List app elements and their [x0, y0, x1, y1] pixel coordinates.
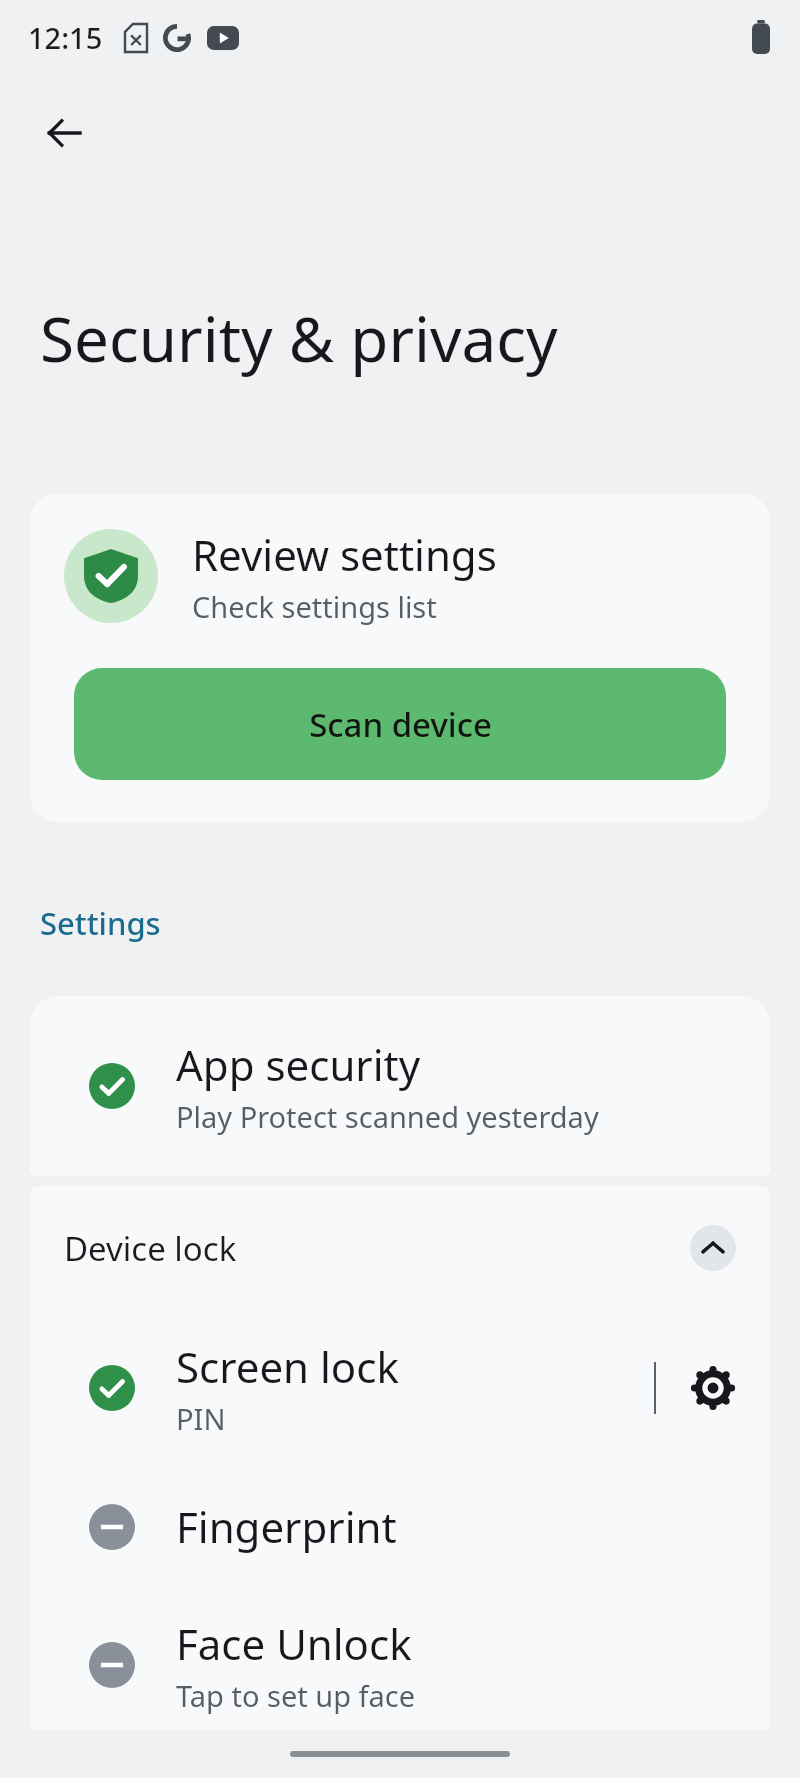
- staticText: Scan device: [309, 702, 492, 747]
- button[interactable]: Review settings: [30, 494, 770, 822]
- staticText: Face Unlock: [176, 1615, 412, 1672]
- staticText: Security & privacy: [40, 296, 558, 380]
- staticText: Fingerprint: [176, 1498, 397, 1555]
- button[interactable]: Screen lock settings: [656, 1328, 770, 1448]
- button[interactable]: App security: [30, 996, 770, 1176]
- button[interactable]: Back: [24, 93, 104, 173]
- staticText: Play Protect scanned yesterday: [176, 1097, 599, 1136]
- staticText: 12:15: [28, 18, 103, 57]
- staticText: Review settings: [192, 526, 497, 583]
- button[interactable]: Device lock: [30, 1186, 770, 1310]
- staticText: Check settings list: [192, 587, 437, 626]
- staticText: PIN: [176, 1399, 226, 1438]
- button[interactable]: Collapse Device lock: [690, 1225, 736, 1271]
- button[interactable]: Face Unlock: [30, 1587, 770, 1743]
- button[interactable]: Screen lock: [30, 1310, 770, 1466]
- staticText: App security: [176, 1036, 421, 1093]
- staticText: Settings: [40, 902, 161, 944]
- button[interactable]: Scan device: [74, 668, 726, 780]
- staticText: Tap to set up face: [176, 1676, 416, 1715]
- staticText: Device lock: [64, 1226, 237, 1271]
- staticText: Screen lock: [176, 1338, 399, 1395]
- button[interactable]: Fingerprint: [30, 1466, 770, 1587]
